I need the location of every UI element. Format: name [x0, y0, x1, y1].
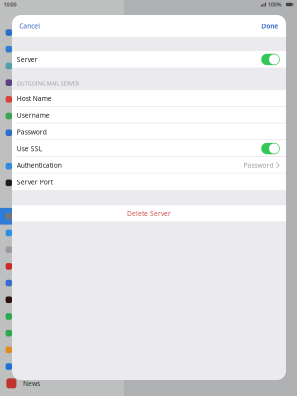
staticText: Done [261, 22, 278, 30]
staticText: Use SSL [17, 144, 42, 153]
staticText: 10:00 [4, 1, 17, 8]
staticText: OUTGOING MAIL SERVER [17, 80, 79, 87]
staticText: Password [17, 127, 47, 136]
staticText: Authentication [17, 161, 62, 170]
button[interactable]: Server Port [12, 174, 286, 190]
staticText: Server [17, 55, 38, 64]
button[interactable]: Authentication [12, 157, 286, 174]
button[interactable]: Server [12, 51, 286, 68]
button[interactable]: Cancel [12, 15, 47, 37]
button[interactable]: Use SSL [12, 140, 286, 157]
button[interactable]: Username [12, 107, 286, 123]
staticText: Host Name [17, 94, 52, 103]
staticText: Delete Server [127, 209, 171, 218]
button[interactable]: Host Name [12, 90, 286, 107]
staticText: 100% [268, 1, 282, 8]
button[interactable]: Delete Server [12, 205, 286, 221]
staticText: Cancel [19, 22, 40, 30]
staticText: Server Port [17, 177, 53, 186]
staticText: Username [17, 111, 50, 120]
button[interactable]: Password [12, 123, 286, 140]
staticText: Password [243, 161, 273, 170]
button[interactable]: Done [254, 15, 286, 37]
staticText: News [23, 379, 40, 388]
